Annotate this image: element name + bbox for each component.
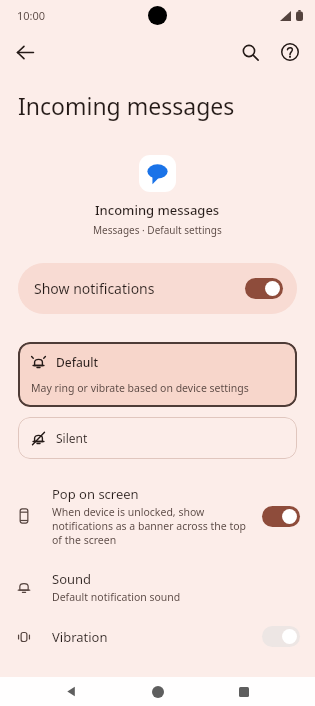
button[interactable]: Back [56,677,86,706]
staticText: Silent [56,430,88,446]
staticText: Messages · Default settings [93,223,222,237]
button[interactable]: Silent [18,417,297,459]
button[interactable]: Show notifications [18,263,297,314]
button[interactable]: Search [230,32,270,72]
button[interactable]: Default [18,342,297,407]
button[interactable]: Recents [229,677,259,706]
staticText: Default [56,354,99,370]
button[interactable]: Home [143,677,173,706]
staticText: Pop on screen [52,485,139,503]
staticText: Default notification sound [52,590,181,604]
staticText: Incoming messages [95,201,220,219]
staticText: Show notifications [34,279,245,298]
button[interactable]: Help [270,32,310,72]
staticText: Sound [52,570,92,588]
staticText: Vibration [52,628,262,646]
staticText: 10:00 [17,8,46,23]
staticText: When device is unlocked, show notificati… [52,505,254,547]
button[interactable]: Back [5,32,45,72]
button[interactable]: Pop on screen [0,477,315,555]
staticText: May ring or vibrate based on device sett… [31,381,249,395]
staticText: Incoming messages [18,90,235,121]
button[interactable]: Vibration [0,617,315,656]
button[interactable]: Sound [0,561,315,613]
